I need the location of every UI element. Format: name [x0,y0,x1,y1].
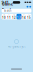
button[interactable]: T [7,14,12,19]
staticText: T [18,14,19,15]
staticText: M [4,14,5,15]
button[interactable]: W [11,14,16,19]
staticText: No games yet [7,45,25,48]
staticText: S [28,14,29,15]
staticText: 12 [12,16,16,19]
staticText: 15 [27,16,31,19]
staticText: Search [4,9,12,12]
staticText: 14 [22,16,26,19]
staticText: T [8,14,9,15]
button[interactable]: T [16,14,21,19]
button[interactable]: F [21,14,26,19]
staticText: 9:41 [1,0,8,5]
button[interactable]: Search [0,9,33,13]
button[interactable]: Actions [27,6,33,8]
staticText: Game Tracker [2,1,16,12]
button[interactable]: M [2,14,7,19]
staticText: 10 [2,16,6,19]
staticText: 13 [17,16,21,19]
staticText: 11 [7,16,11,19]
button[interactable]: S [26,14,31,19]
staticText: F [23,14,24,15]
